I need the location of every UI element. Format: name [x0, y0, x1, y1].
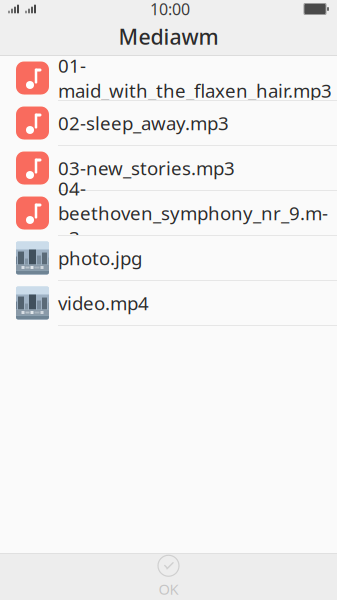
staticText: 02-sleep_away.mp3	[58, 111, 229, 135]
button[interactable]: 04-beethoven_symphony_nr_9.mp3	[0, 191, 337, 236]
staticText: 10:00	[150, 0, 190, 20]
staticText: video.mp4	[58, 291, 149, 315]
staticText: Mediawm	[118, 22, 218, 51]
button[interactable]: 03-new_stories.mp3	[0, 146, 337, 191]
button[interactable]: photo.jpg	[0, 236, 337, 281]
button[interactable]: 02-sleep_away.mp3	[0, 101, 337, 146]
staticText: 04-beethoven_symphony_nr_9.mp3	[58, 176, 328, 250]
button[interactable]: OK	[138, 554, 198, 600]
button[interactable]: 01-maid_with_the_flaxen_hair.mp3	[0, 56, 337, 101]
staticText: OK	[158, 579, 178, 599]
staticText: 03-new_stories.mp3	[58, 156, 235, 180]
staticText: 01-maid_with_the_flaxen_hair.mp3	[58, 53, 332, 103]
button[interactable]: video.mp4	[0, 281, 337, 326]
staticText: photo.jpg	[58, 246, 142, 270]
